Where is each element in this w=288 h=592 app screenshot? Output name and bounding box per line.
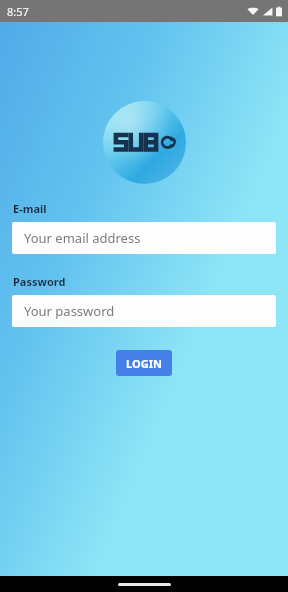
button[interactable]: LOGIN (116, 350, 172, 376)
staticText: Your password (24, 302, 115, 320)
staticText: Password (13, 274, 66, 289)
button[interactable]: Your password (12, 295, 276, 327)
staticText: E-mail (13, 201, 47, 216)
button[interactable]: Your email address (12, 222, 276, 254)
staticText: 8:57 (7, 4, 29, 19)
staticText: LOGIN (126, 356, 162, 371)
staticText: Your email address (24, 229, 141, 247)
